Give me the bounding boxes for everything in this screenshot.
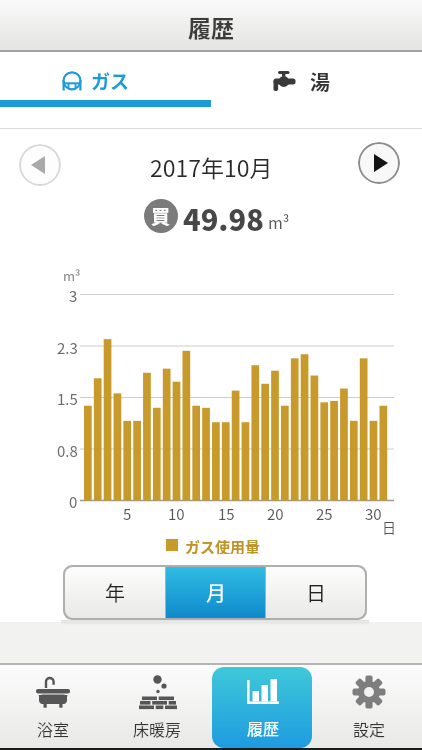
staticText: 月 (206, 578, 226, 607)
staticText: 25 (316, 503, 333, 525)
staticText: 年 (105, 578, 125, 607)
staticText: ガス (91, 67, 130, 95)
button[interactable]: 浴室 (0, 665, 105, 750)
staticText: 2017年10月 (150, 150, 273, 183)
staticText: 履歴 (247, 716, 280, 739)
staticText: 履歴 (188, 10, 234, 43)
button[interactable] (358, 142, 400, 184)
staticText: 49.98 (183, 197, 264, 234)
staticText: 設定 (353, 717, 386, 740)
staticText: 湯 (310, 67, 330, 96)
button[interactable]: 履歴 (210, 665, 316, 750)
staticText: 2.3 (57, 337, 78, 359)
button[interactable]: 日 (266, 567, 365, 618)
staticText: 15 (218, 503, 235, 525)
staticText: ガス使用量 (185, 536, 261, 554)
staticText: 0 (69, 491, 78, 513)
button[interactable]: 設定 (316, 665, 422, 750)
staticText: 買 (151, 202, 171, 230)
button[interactable]: 月 (166, 567, 265, 618)
staticText: 浴室 (37, 717, 70, 740)
staticText: 1.5 (57, 388, 78, 410)
staticText: 0.8 (57, 440, 78, 462)
staticText: 日 (382, 517, 396, 537)
staticText: 30 (365, 503, 382, 525)
button[interactable]: 床暖房 (105, 665, 210, 750)
button[interactable]: 年 (65, 567, 165, 618)
staticText: 20 (267, 503, 284, 525)
staticText: 日 (306, 578, 326, 607)
staticText: 床暖房 (133, 717, 182, 740)
button[interactable]: 湯 (211, 52, 422, 107)
staticText: m³ (63, 266, 81, 285)
staticText: m³ (268, 210, 290, 233)
button[interactable]: ガス (0, 52, 211, 107)
button[interactable] (19, 144, 61, 186)
staticText: 3 (69, 285, 78, 307)
staticText: 10 (168, 503, 185, 525)
staticText: 5 (123, 503, 132, 525)
